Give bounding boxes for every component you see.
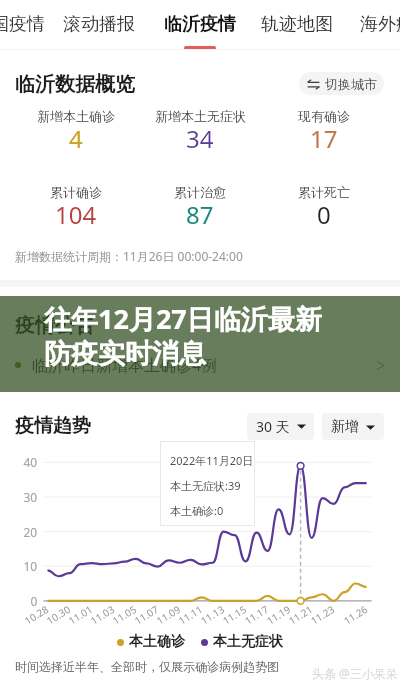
staticText: 海外疫情 [360, 13, 400, 36]
staticText: 新增本土无症状 [155, 108, 246, 124]
button[interactable]: 全国疫情 [0, 0, 46, 48]
staticText: 往年12月27日临沂最新 [44, 300, 322, 337]
button[interactable]: 临沂疫情 [163, 0, 237, 48]
staticText: 防疫实时消息 [44, 337, 206, 371]
staticText: 34 [186, 122, 214, 155]
staticText: 现有确诊 [298, 108, 350, 124]
staticText: 本土无症状:39 [170, 478, 241, 493]
staticText: 累计死亡 [298, 184, 350, 200]
button[interactable]: 切换城市 [299, 72, 384, 95]
button[interactable]: 轨迹地图 [260, 0, 334, 48]
staticText: 头条 @三小呆呆 [312, 665, 398, 681]
button[interactable]: 海外疫情 [359, 0, 400, 48]
staticText: 临沂昨日新增本土确诊4例 [32, 354, 218, 376]
staticText: 临沂数据概览 [15, 72, 135, 97]
staticText: 87 [186, 198, 214, 231]
button[interactable]: 临沂昨日新增本土确诊4例 [15, 354, 385, 376]
staticText: 104 [55, 198, 97, 231]
staticText: 本土确诊:0 [170, 503, 224, 518]
staticText: 30 天 [256, 417, 290, 436]
staticText: 新增本土确诊 [37, 108, 115, 124]
staticText: 本土确诊 [129, 633, 185, 651]
staticText: 疫情公告 [15, 313, 95, 338]
staticText: 17 [310, 122, 338, 155]
staticText: 累计确诊 [50, 184, 102, 200]
button[interactable]: 新增 [322, 413, 384, 440]
staticText: 滚动播报 [63, 13, 135, 36]
staticText: 新增数据统计周期：11月26日 00:00-24:00 [15, 248, 243, 264]
staticText: 0 [317, 198, 331, 231]
staticText: 2022年11月20日 [170, 453, 254, 468]
button[interactable]: 滚动播报 [62, 0, 136, 48]
staticText: 时间选择近半年、全部时，仅展示确诊病例趋势图 [15, 659, 279, 674]
button[interactable]: 30 天 [247, 413, 314, 440]
staticText: 切换城市 [325, 76, 377, 92]
staticText: 临沂疫情 [164, 13, 236, 36]
staticText: 疫情趋势 [15, 414, 91, 438]
staticText: 本土无症状 [213, 633, 283, 651]
staticText: 轨迹地图 [261, 13, 333, 36]
staticText: 新增 [331, 418, 359, 436]
staticText: 全国疫情 [0, 13, 45, 36]
staticText: 累计治愈 [174, 184, 226, 200]
staticText: 4 [69, 122, 83, 155]
